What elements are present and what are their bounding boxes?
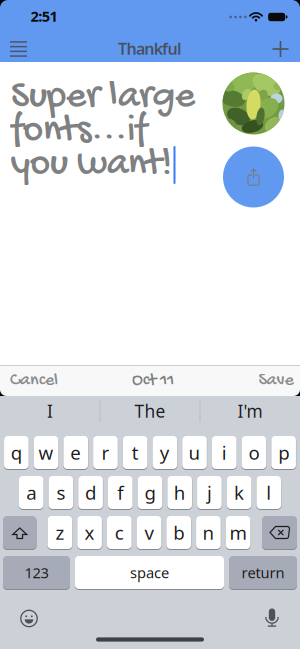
- staticText: o: [248, 440, 259, 465]
- staticText: I'm: [237, 399, 262, 422]
- staticText: Super large: [11, 75, 195, 121]
- button[interactable]: b: [166, 516, 191, 549]
- staticText: f: [117, 480, 123, 505]
- staticText: w: [39, 440, 54, 465]
- button[interactable]: i: [212, 436, 236, 469]
- staticText: Save: [258, 370, 293, 392]
- button[interactable]: j: [197, 476, 222, 509]
- button[interactable]: Shift: [3, 516, 36, 549]
- button[interactable]: r: [93, 436, 118, 469]
- button[interactable]: w: [34, 436, 58, 469]
- button[interactable]: Dictation: [257, 602, 287, 632]
- staticText: Oct 11: [132, 370, 174, 392]
- button[interactable]: I: [2, 397, 98, 425]
- staticText: b: [173, 520, 184, 545]
- button[interactable]: Add entry: [272, 41, 288, 57]
- staticText: 123: [24, 563, 48, 582]
- button[interactable]: Return: [229, 556, 297, 589]
- staticText: j: [207, 480, 212, 505]
- button[interactable]: h: [167, 476, 192, 509]
- staticText: k: [234, 480, 244, 505]
- button[interactable]: Menu: [6, 37, 30, 61]
- button[interactable]: u: [182, 436, 207, 469]
- button[interactable]: o: [242, 436, 266, 469]
- staticText: p: [278, 440, 289, 465]
- staticText: Thankful: [118, 38, 182, 59]
- staticText: The: [134, 399, 165, 422]
- button[interactable]: space: [75, 556, 224, 589]
- staticText: e: [70, 440, 81, 465]
- staticText: l: [266, 480, 271, 505]
- button[interactable]: t: [123, 436, 147, 469]
- button[interactable]: p: [271, 436, 296, 469]
- button[interactable]: y: [153, 436, 177, 469]
- staticText: y: [160, 440, 170, 465]
- staticText: 2:51: [30, 6, 57, 26]
- button[interactable]: Delete: [262, 516, 297, 549]
- staticText: a: [26, 480, 36, 505]
- button[interactable]: I'm: [202, 397, 298, 425]
- button[interactable]: c: [107, 516, 132, 549]
- staticText: t: [132, 440, 139, 465]
- staticText: return: [241, 563, 284, 582]
- staticText: r: [101, 440, 109, 465]
- staticText: v: [144, 520, 153, 545]
- staticText: u: [189, 440, 201, 465]
- button[interactable]: The: [102, 397, 198, 425]
- button[interactable]: d: [78, 476, 103, 509]
- staticText: fonts...if: [11, 109, 147, 154]
- staticText: g: [144, 480, 155, 505]
- staticText: i: [222, 440, 227, 465]
- staticText: z: [55, 520, 64, 545]
- button[interactable]: m: [226, 516, 250, 549]
- staticText: x: [85, 520, 95, 545]
- button[interactable]: Save: [254, 366, 297, 396]
- staticText: I: [47, 399, 53, 422]
- button[interactable]: f: [108, 476, 133, 509]
- button[interactable]: v: [137, 516, 161, 549]
- button[interactable]: e: [63, 436, 88, 469]
- staticText: c: [115, 520, 124, 545]
- button[interactable]: g: [138, 476, 162, 509]
- button[interactable]: a: [19, 476, 43, 509]
- button[interactable]: Numbers: [3, 556, 70, 589]
- button[interactable]: Emoji: [14, 603, 44, 633]
- button[interactable]: Share: [223, 146, 284, 207]
- staticText: h: [174, 480, 186, 505]
- button[interactable]: Cancel: [6, 366, 62, 396]
- staticText: you want!: [11, 142, 172, 188]
- button[interactable]: z: [48, 516, 72, 549]
- staticText: s: [56, 480, 65, 505]
- button[interactable]: n: [196, 516, 221, 549]
- button[interactable]: q: [4, 436, 29, 469]
- button[interactable]: x: [77, 516, 102, 549]
- staticText: space: [130, 563, 169, 582]
- staticText: q: [11, 440, 22, 465]
- staticText: Cancel: [10, 370, 58, 392]
- staticText: n: [202, 520, 214, 545]
- button[interactable]: s: [49, 476, 73, 509]
- button[interactable]: l: [256, 476, 281, 509]
- staticText: m: [230, 520, 247, 545]
- button[interactable]: k: [227, 476, 251, 509]
- staticText: d: [85, 480, 96, 505]
